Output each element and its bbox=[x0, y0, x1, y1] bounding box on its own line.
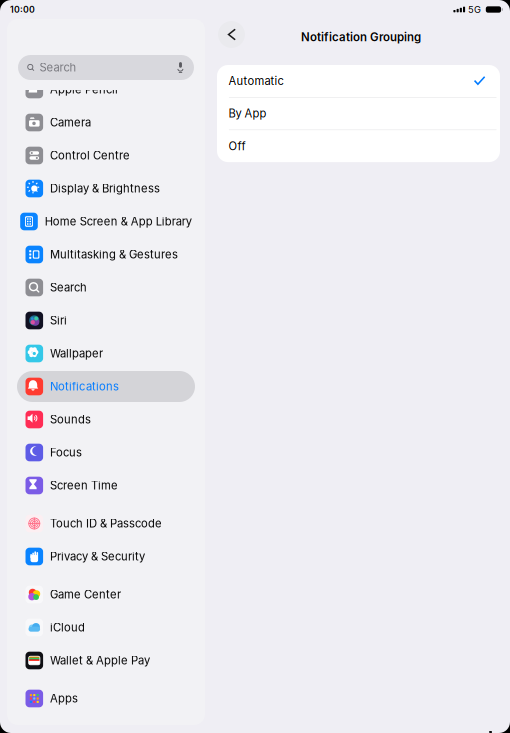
staticText: Camera bbox=[50, 116, 91, 129]
button[interactable]: Camera bbox=[17, 106, 195, 139]
staticText: Screen Time bbox=[50, 479, 118, 492]
staticText: Automatic bbox=[228, 74, 283, 88]
button[interactable]: Home Screen & App Library bbox=[17, 205, 195, 238]
staticText: Search bbox=[50, 281, 87, 294]
button[interactable]: Off bbox=[217, 130, 500, 162]
staticText: Game Center bbox=[50, 588, 121, 601]
button[interactable]: Privacy & Security bbox=[17, 540, 195, 573]
staticText: 10:00 bbox=[10, 4, 35, 15]
staticText: Notification Grouping bbox=[301, 30, 421, 44]
staticText: Apple Pencil bbox=[50, 83, 118, 96]
button[interactable]: Sounds bbox=[17, 403, 195, 436]
button[interactable]: By App bbox=[217, 97, 500, 129]
staticText: Touch ID & Passcode bbox=[50, 517, 162, 530]
staticText: Home Screen & App Library bbox=[45, 215, 192, 228]
button[interactable]: Apps bbox=[17, 682, 195, 715]
staticText: Wallet & Apple Pay bbox=[50, 654, 150, 667]
staticText: Multitasking & Gestures bbox=[50, 248, 178, 261]
staticText: 5G bbox=[468, 4, 481, 15]
button[interactable]: Wallet & Apple Pay bbox=[17, 644, 195, 677]
staticText: Privacy & Security bbox=[50, 550, 145, 563]
button[interactable]: Display & Brightness bbox=[17, 172, 195, 205]
button[interactable]: Automatic bbox=[217, 65, 500, 97]
staticText: iCloud bbox=[50, 621, 85, 634]
button[interactable]: Search bbox=[18, 55, 194, 80]
staticText: Control Centre bbox=[50, 149, 130, 162]
staticText: Search bbox=[40, 61, 77, 74]
button[interactable]: Siri bbox=[17, 304, 195, 337]
button[interactable]: Touch ID & Passcode bbox=[17, 507, 195, 540]
button[interactable]: Game Center bbox=[17, 578, 195, 611]
staticText: By App bbox=[228, 107, 266, 120]
staticText: Display & Brightness bbox=[50, 182, 160, 195]
button[interactable]: Screen Time bbox=[17, 469, 195, 502]
button[interactable]: Search bbox=[17, 271, 195, 304]
button[interactable]: Control Centre bbox=[17, 139, 195, 172]
staticText: Sounds bbox=[50, 413, 91, 426]
staticText: Focus bbox=[50, 446, 82, 459]
button[interactable]: Wallpaper bbox=[17, 337, 195, 370]
staticText: Apps bbox=[50, 692, 78, 705]
button[interactable]: Back bbox=[215, 18, 247, 50]
staticText: Notifications bbox=[50, 380, 119, 393]
staticText: Siri bbox=[50, 314, 67, 327]
staticText: Wallpaper bbox=[50, 347, 103, 360]
staticText: Off bbox=[228, 139, 245, 153]
button[interactable]: Notifications bbox=[17, 370, 195, 403]
button[interactable]: Focus bbox=[17, 436, 195, 469]
button[interactable]: iCloud bbox=[17, 611, 195, 644]
button[interactable]: Apple Pencil bbox=[17, 73, 195, 106]
button[interactable]: Multitasking & Gestures bbox=[17, 238, 195, 271]
